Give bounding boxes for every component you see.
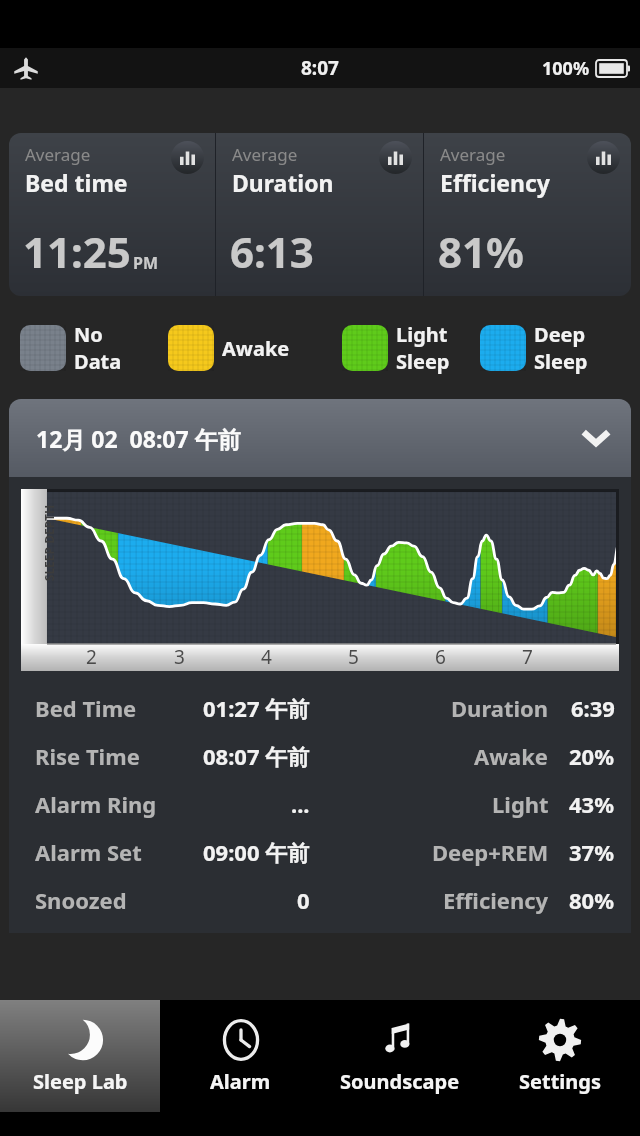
button[interactable]: Average	[9, 133, 215, 296]
staticText: ...	[291, 789, 310, 819]
button[interactable]: No	[20, 321, 122, 375]
staticText: Light	[492, 789, 549, 819]
button[interactable]: SLEEP DEPTH	[21, 489, 619, 671]
staticText: 6:13	[230, 223, 314, 280]
button[interactable]: Rise Time	[9, 732, 631, 780]
staticText: 43%	[569, 789, 615, 819]
staticText: 7	[522, 644, 533, 670]
staticText: 08:07 午前	[203, 741, 310, 771]
staticText: No	[74, 321, 103, 348]
staticText: Alarm	[210, 1068, 271, 1095]
button[interactable]: Awake	[168, 325, 290, 371]
staticText: 11:25	[23, 223, 131, 280]
button[interactable]: Efficiency chart	[587, 141, 620, 174]
staticText: Duration	[232, 167, 334, 198]
staticText: 12月 02 08:07 午前	[36, 423, 241, 454]
button[interactable]: Soundscape	[320, 1000, 480, 1112]
staticText: Awake	[474, 741, 549, 771]
button[interactable]: Average	[216, 133, 423, 296]
staticText: 4	[261, 644, 272, 670]
staticText: Average	[25, 143, 91, 166]
button[interactable]: Alarm Ring	[9, 780, 631, 828]
button[interactable]: Snoozed	[9, 876, 631, 924]
staticText: Rise Time	[35, 741, 140, 771]
other: Alarm	[218, 1017, 264, 1063]
button[interactable]: Bed Time	[9, 684, 631, 732]
staticText: Sleep	[396, 348, 450, 375]
staticText: Alarm Set	[35, 837, 142, 867]
staticText: 0	[297, 885, 310, 915]
staticText: Efficiency	[440, 167, 550, 198]
staticText: Sleep Lab	[33, 1068, 128, 1095]
staticText: Duration	[451, 693, 549, 723]
staticText: Data	[74, 348, 122, 375]
other: Airplane mode	[14, 56, 38, 80]
staticText: Settings	[519, 1068, 601, 1095]
staticText: Sleep	[534, 348, 588, 375]
button[interactable]: Deep	[480, 321, 588, 375]
staticText: 6	[435, 644, 446, 670]
staticText: 2	[86, 644, 97, 670]
staticText: 37%	[569, 837, 615, 867]
staticText: 01:27 午前	[203, 693, 310, 723]
staticText: Deep+REM	[432, 837, 549, 867]
staticText: Soundscape	[340, 1068, 460, 1095]
staticText: SLEEP DEPTH	[41, 497, 57, 589]
staticText: 81%	[438, 223, 524, 280]
staticText: 8:07	[301, 55, 339, 81]
other: Settings	[537, 1017, 583, 1063]
staticText: Efficiency	[443, 885, 549, 915]
other: Soundscape	[377, 1017, 423, 1063]
staticText: Awake	[222, 335, 290, 362]
button[interactable]: Average	[424, 133, 631, 296]
staticText: Average	[232, 143, 298, 166]
button[interactable]: Bed time chart	[171, 141, 204, 174]
staticText: 3	[174, 644, 185, 670]
staticText: PM	[133, 252, 159, 274]
other: Sleep Lab	[58, 1017, 104, 1063]
staticText: 20%	[569, 741, 615, 771]
staticText: Bed Time	[35, 693, 137, 723]
staticText: 100%	[542, 56, 590, 81]
button[interactable]: Alarm	[160, 1000, 320, 1112]
button[interactable]: Alarm Set	[9, 828, 631, 876]
other: Collapse	[583, 425, 609, 451]
staticText: 6:39	[571, 693, 615, 723]
button[interactable]: Sleep Lab	[0, 1000, 160, 1112]
staticText: Bed time	[25, 167, 128, 198]
button[interactable]: 12月 02 08:07 午前	[9, 399, 631, 477]
staticText: Alarm Ring	[35, 789, 157, 819]
button[interactable]: Light	[342, 321, 450, 375]
staticText: 5	[348, 644, 359, 670]
button[interactable]: Settings	[480, 1000, 640, 1112]
staticText: 80%	[569, 885, 615, 915]
staticText: Average	[440, 143, 506, 166]
button[interactable]: Duration chart	[379, 141, 412, 174]
staticText: Snoozed	[35, 885, 127, 915]
staticText: Deep	[534, 321, 586, 348]
staticText: Light	[396, 321, 448, 348]
staticText: 09:00 午前	[203, 837, 310, 867]
